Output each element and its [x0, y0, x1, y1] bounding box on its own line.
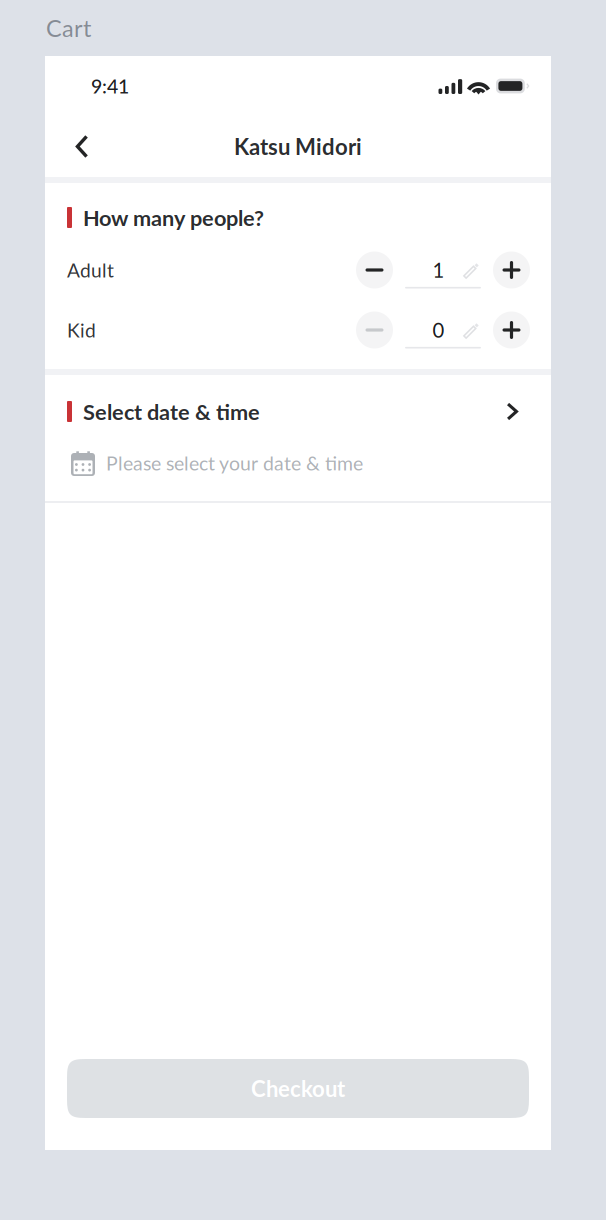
staticText: Checkout	[251, 1075, 345, 1102]
button[interactable]: Increase	[493, 251, 530, 288]
button[interactable]: Back	[60, 124, 104, 168]
staticText: Select date & time	[83, 398, 260, 425]
staticText: Cart	[46, 14, 91, 42]
staticText: Kid	[67, 318, 96, 341]
button[interactable]: Decrease	[356, 311, 393, 348]
button[interactable]: Increase	[493, 311, 530, 348]
staticText: Katsu Midori	[234, 133, 362, 160]
staticText: How many people?	[83, 204, 264, 231]
staticText: 0	[432, 318, 444, 342]
staticText: Adult	[67, 258, 114, 281]
staticText: Please select your date & time	[106, 451, 363, 475]
staticText: 1	[432, 258, 444, 282]
button[interactable]: Please select your date & time	[45, 449, 551, 477]
staticText: 9:41	[91, 74, 129, 98]
button[interactable]: Checkout	[67, 1059, 529, 1118]
button[interactable]: Decrease	[356, 251, 393, 288]
button[interactable]: Select date & time	[45, 401, 551, 422]
